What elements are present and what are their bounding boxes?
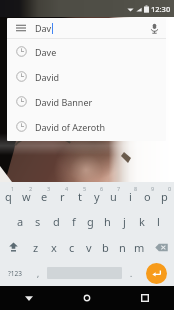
button[interactable]: Enter <box>146 263 167 284</box>
button[interactable]: . <box>123 260 139 286</box>
button[interactable]: a <box>11 208 29 234</box>
staticText: u <box>110 189 117 204</box>
staticText: k <box>139 214 145 229</box>
button[interactable]: x <box>45 234 63 260</box>
button[interactable]: f <box>65 208 82 234</box>
staticText: y <box>94 189 100 204</box>
button[interactable]: 4 <box>54 182 72 208</box>
staticText: c <box>69 240 75 255</box>
button[interactable]: , <box>30 260 46 286</box>
button[interactable]: 2 <box>18 182 36 208</box>
button[interactable]: Open navigation menu <box>7 18 35 38</box>
button[interactable]: 3 <box>36 182 54 208</box>
button[interactable]: Home <box>58 286 116 310</box>
button[interactable]: l <box>150 208 167 234</box>
staticText: l <box>157 214 160 229</box>
button[interactable]: Backspace <box>148 234 174 260</box>
staticText: t <box>78 189 82 204</box>
button[interactable]: z <box>27 234 45 260</box>
staticText: x <box>51 240 57 255</box>
staticText: David <box>35 71 60 83</box>
staticText: j <box>123 214 126 229</box>
button[interactable]: David of Azeroth <box>7 114 166 139</box>
button[interactable]: 1 <box>0 182 18 208</box>
staticText: 7 <box>117 185 121 192</box>
staticText: n <box>119 240 126 255</box>
staticText: 3 <box>47 185 51 192</box>
button[interactable]: Shift <box>0 234 27 260</box>
staticText: 1 <box>11 185 15 192</box>
button[interactable]: 0 <box>157 182 174 208</box>
staticText: 9 <box>151 185 155 192</box>
button[interactable]: ?123 <box>0 260 30 286</box>
staticText: f <box>72 214 76 229</box>
button[interactable]: 7 <box>106 182 123 208</box>
staticText: p <box>161 189 168 204</box>
staticText: 0 <box>168 185 172 192</box>
staticText: o <box>144 189 151 204</box>
staticText: 5 <box>83 185 87 192</box>
staticText: 8 <box>134 185 138 192</box>
staticText: . <box>130 268 133 279</box>
button[interactable]: David Banner <box>7 89 166 114</box>
staticText: z <box>33 240 39 255</box>
staticText: i <box>129 189 132 204</box>
staticText: g <box>87 214 94 229</box>
button[interactable]: c <box>63 234 80 260</box>
staticText: r <box>60 189 65 204</box>
staticText: 12:30 <box>151 4 171 14</box>
staticText: d <box>53 214 60 229</box>
staticText: 6 <box>100 185 104 192</box>
staticText: e <box>41 189 48 204</box>
button[interactable]: k <box>133 208 150 234</box>
staticText: David Banner <box>35 96 93 108</box>
staticText: w <box>22 189 31 204</box>
button[interactable]: v <box>80 234 97 260</box>
staticText: s <box>35 214 41 229</box>
button[interactable]: 9 <box>140 182 157 208</box>
staticText: David of Azeroth <box>35 121 106 133</box>
button[interactable]: Recent apps <box>116 286 174 310</box>
staticText: 4 <box>65 185 69 192</box>
button[interactable]: Open navigation menu <box>7 18 166 38</box>
button[interactable]: n <box>114 234 131 260</box>
staticText: a <box>17 214 24 229</box>
staticText: Dave <box>35 46 57 58</box>
staticText: 2 <box>29 185 33 192</box>
button[interactable]: b <box>97 234 114 260</box>
staticText: Dav <box>35 22 52 34</box>
staticText: v <box>86 240 92 255</box>
button[interactable]: h <box>99 208 116 234</box>
button[interactable]: Back <box>0 286 58 310</box>
staticText: ?123 <box>8 269 22 278</box>
button[interactable]: 8 <box>123 182 140 208</box>
button[interactable]: David <box>7 64 166 89</box>
button[interactable]: Voice search <box>142 18 166 38</box>
button[interactable]: 6 <box>89 182 106 208</box>
button[interactable]: 5 <box>72 182 89 208</box>
button[interactable]: d <box>47 208 65 234</box>
button[interactable]: j <box>116 208 133 234</box>
staticText: b <box>102 240 109 255</box>
staticText: h <box>104 214 111 229</box>
button[interactable]: s <box>29 208 47 234</box>
staticText: q <box>5 189 12 204</box>
button[interactable]: m <box>131 234 148 260</box>
staticText: , <box>37 268 40 279</box>
button[interactable]: g <box>82 208 99 234</box>
button[interactable]: Dave <box>7 39 166 64</box>
staticText: m <box>134 240 145 255</box>
